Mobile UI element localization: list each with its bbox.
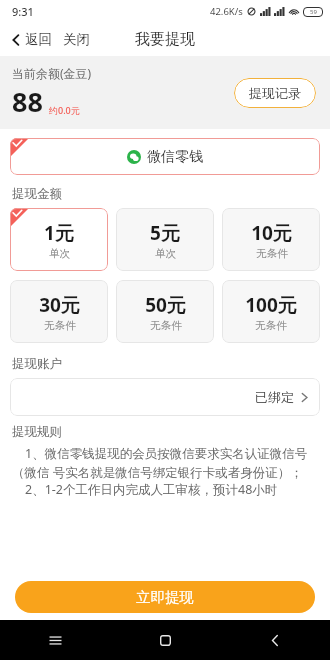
button[interactable]: 关闭 (60, 26, 93, 53)
button[interactable]: 50元 (116, 280, 214, 343)
button[interactable]: 提现记录 (234, 78, 316, 108)
staticText: 提现记录 (249, 85, 301, 101)
staticText: 50元 (145, 292, 186, 318)
staticText: 单次 (49, 247, 70, 260)
staticText: 30元 (39, 292, 80, 318)
button[interactable]: 100元 (222, 280, 320, 343)
button[interactable]: 5元 (116, 208, 214, 271)
staticText: 10元 (251, 220, 292, 246)
staticText: 单次 (155, 247, 176, 260)
button[interactable]: Back (220, 620, 330, 660)
staticText: 提现金额 (12, 186, 62, 202)
staticText: 2、1-2个工作日内完成人工审核，预计48小时 (12, 481, 278, 498)
button[interactable]: Recent apps (0, 620, 110, 660)
staticText: 返回 (25, 31, 52, 48)
staticText: 微信零钱 (147, 148, 203, 166)
staticText: 无条件 (44, 319, 76, 332)
staticText: 无条件 (256, 247, 288, 260)
staticText: 约0.0元 (49, 104, 80, 116)
staticText: 5元 (150, 220, 180, 246)
staticText: 1、微信零钱提现的会员按微信要求实名认证微信号（微信 号实名就是微信号绑定银行卡… (12, 445, 318, 481)
staticText: 1元 (44, 220, 74, 246)
staticText: 42.6K/s (210, 5, 243, 18)
staticText: 88 (12, 83, 43, 120)
staticText: 当前余额(金豆) (12, 65, 92, 81)
staticText: 已绑定 (255, 389, 294, 405)
staticText: 59 (310, 8, 317, 16)
staticText: 我要提现 (135, 30, 195, 49)
staticText: 100元 (245, 292, 297, 318)
button[interactable]: 立即提现 (15, 581, 315, 613)
button[interactable]: 已绑定 (10, 378, 320, 416)
staticText: 无条件 (150, 319, 182, 332)
staticText: 9:31 (12, 4, 34, 19)
button[interactable]: 30元 (10, 280, 108, 343)
button[interactable]: 返回 (7, 26, 55, 53)
staticText: 无条件 (255, 319, 287, 332)
staticText: 提现账户 (12, 356, 62, 372)
button[interactable]: 10元 (222, 208, 320, 271)
button[interactable]: 1元 (10, 208, 108, 271)
staticText: 立即提现 (136, 588, 194, 606)
button[interactable]: 微信零钱 (10, 138, 320, 175)
staticText: 提现规则 (12, 424, 62, 440)
button[interactable]: Home (110, 620, 220, 660)
